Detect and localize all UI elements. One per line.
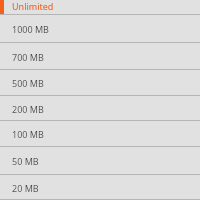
button[interactable]: 20 MB — [0, 175, 200, 200]
staticText: 1000 MB — [12, 23, 49, 35]
button[interactable]: 1000 MB — [0, 15, 200, 43]
staticText: 100 MB — [12, 128, 44, 140]
button[interactable]: 200 MB — [0, 96, 200, 121]
button[interactable]: 50 MB — [0, 147, 200, 175]
staticText: 50 MB — [12, 155, 39, 167]
button[interactable]: Unlimited — [0, 0, 200, 15]
staticText: 20 MB — [12, 182, 39, 194]
button[interactable]: 100 MB — [0, 121, 200, 147]
staticText: 200 MB — [12, 103, 44, 115]
button[interactable]: 500 MB — [0, 70, 200, 96]
staticText: Unlimited — [12, 0, 54, 12]
staticText: 500 MB — [12, 77, 44, 89]
button[interactable]: 700 MB — [0, 43, 200, 70]
staticText: 700 MB — [12, 51, 44, 63]
